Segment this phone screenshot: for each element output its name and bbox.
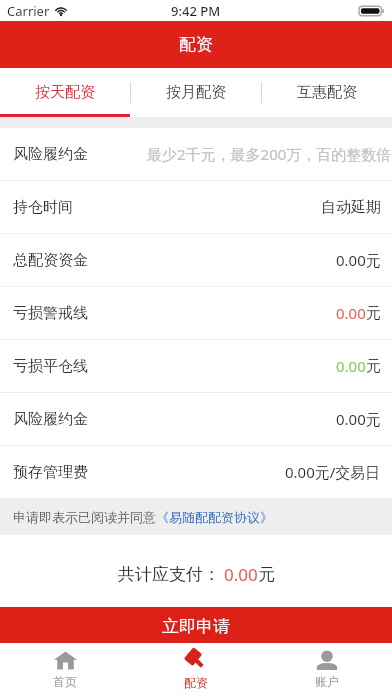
button[interactable]: 互惠配资 [262,68,392,117]
button[interactable]: Account [261,643,392,696]
staticText: 预存管理费 [13,463,88,482]
staticText: 风险履约金 [13,145,88,164]
staticText: 账户 [315,674,339,689]
staticText: 亏损警戒线 [13,304,88,323]
button[interactable]: 亏损警戒线 [0,287,392,339]
button[interactable]: Financing [130,643,261,696]
staticText: 互惠配资 [297,83,357,102]
staticText: 风险履约金 [13,410,88,429]
staticText: 0.00 [336,356,366,376]
staticText: 持仓时间 [13,198,73,217]
staticText: 0.00元/交易日 [285,462,381,482]
staticText: 总配资资金 [13,251,88,270]
staticText: 《易随配配资协议》 [156,509,273,525]
staticText: 首页 [53,674,77,689]
staticText: 0.00元 [336,409,381,429]
button[interactable]: 《易随配配资协议》 [156,509,273,525]
button[interactable]: 按天配资 [0,68,130,117]
button[interactable]: 亏损平仓线 [0,340,392,392]
staticText: 最少2千元，最多200万，百的整数倍 [147,144,392,164]
staticText: 申请即表示已阅读并同意 [13,509,156,525]
staticText: 元 [366,304,381,323]
button[interactable]: 总配资资金 [0,234,392,286]
staticText: 0.00 [224,563,258,586]
button[interactable]: 按月配资 [131,68,261,117]
staticText: 配资 [179,34,213,55]
button[interactable]: 持仓时间 [0,181,392,233]
staticText: 亏损平仓线 [13,357,88,376]
button[interactable]: 风险履约金 [0,128,392,180]
staticText: 自动延期 [321,198,381,217]
staticText: 元 [366,357,381,376]
staticText: 立即申请 [162,616,230,637]
staticText: 配资 [184,675,208,690]
staticText: 0.00 [336,303,366,323]
button[interactable]: 风险履约金 [0,393,392,445]
button[interactable]: Home [0,643,130,696]
staticText: 9:42 PM [171,2,221,20]
button[interactable]: 立即申请 [0,607,392,643]
staticText: 按天配资 [35,83,95,102]
staticText: 共计应支付： [118,564,220,585]
staticText: 元 [258,564,275,585]
button[interactable]: 预存管理费 [0,446,392,498]
staticText: 0.00元 [336,250,381,270]
staticText: Carrier [7,2,50,20]
staticText: 按月配资 [166,83,226,102]
